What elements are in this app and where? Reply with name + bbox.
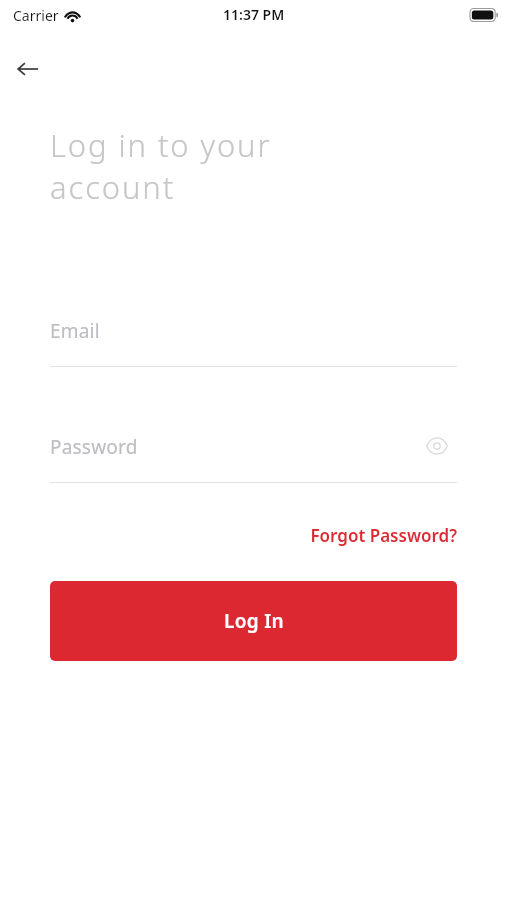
button[interactable]: Back [8,49,48,89]
staticText: account [50,166,176,208]
staticText: Forgot Password? [310,524,457,547]
staticText: Log in to your [50,124,272,166]
staticText: 11:37 PM [223,5,285,24]
button[interactable]: Email [50,300,457,367]
button[interactable]: Forgot Password? [280,519,457,551]
staticText: Carrier [13,6,59,25]
button[interactable]: Password [50,416,457,483]
staticText: Password [50,434,138,460]
button[interactable]: Show password [417,426,457,466]
staticText: Email [50,318,100,344]
button[interactable]: Log In [50,581,457,661]
staticText: Log In [224,608,284,634]
